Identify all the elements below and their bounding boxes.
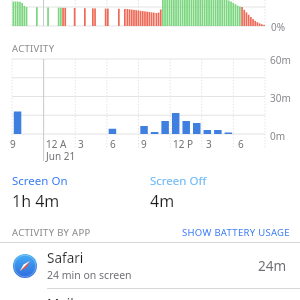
staticText: 6 [110,137,116,151]
staticText: 12 P [173,137,194,151]
staticText: Screen Off [150,173,207,189]
staticText: 60m [270,53,291,67]
staticText: 3 [206,137,212,151]
staticText: Jun 21 [46,149,76,163]
staticText: 1h 4m [12,190,60,212]
button[interactable]: Screen Off [150,173,207,212]
staticText: Mail [47,295,74,300]
staticText: 30m [270,91,291,105]
staticText: 24m [258,257,287,275]
staticText: ACTIVITY [12,42,55,55]
button[interactable]: Screen On [12,173,68,212]
staticText: 3 [78,137,84,151]
staticText: 24 min on screen [47,268,132,282]
staticText: Safari [47,249,84,267]
staticText: 6 [238,137,244,151]
staticText: 9 [141,137,147,151]
staticText: 4m [150,190,175,212]
staticText: SHOW BATTERY USAGE [182,226,290,239]
staticText: 0m [270,129,286,143]
staticText: 9 [10,137,16,151]
staticText: Screen On [12,173,68,189]
button[interactable]: Mail [0,289,300,300]
staticText: 0% [271,20,286,34]
button[interactable]: Safari [0,243,300,288]
staticText: ACTIVITY BY APP [12,226,91,239]
button[interactable]: SHOW BATTERY USAGE [182,226,290,239]
staticText: 12 A [46,137,67,151]
